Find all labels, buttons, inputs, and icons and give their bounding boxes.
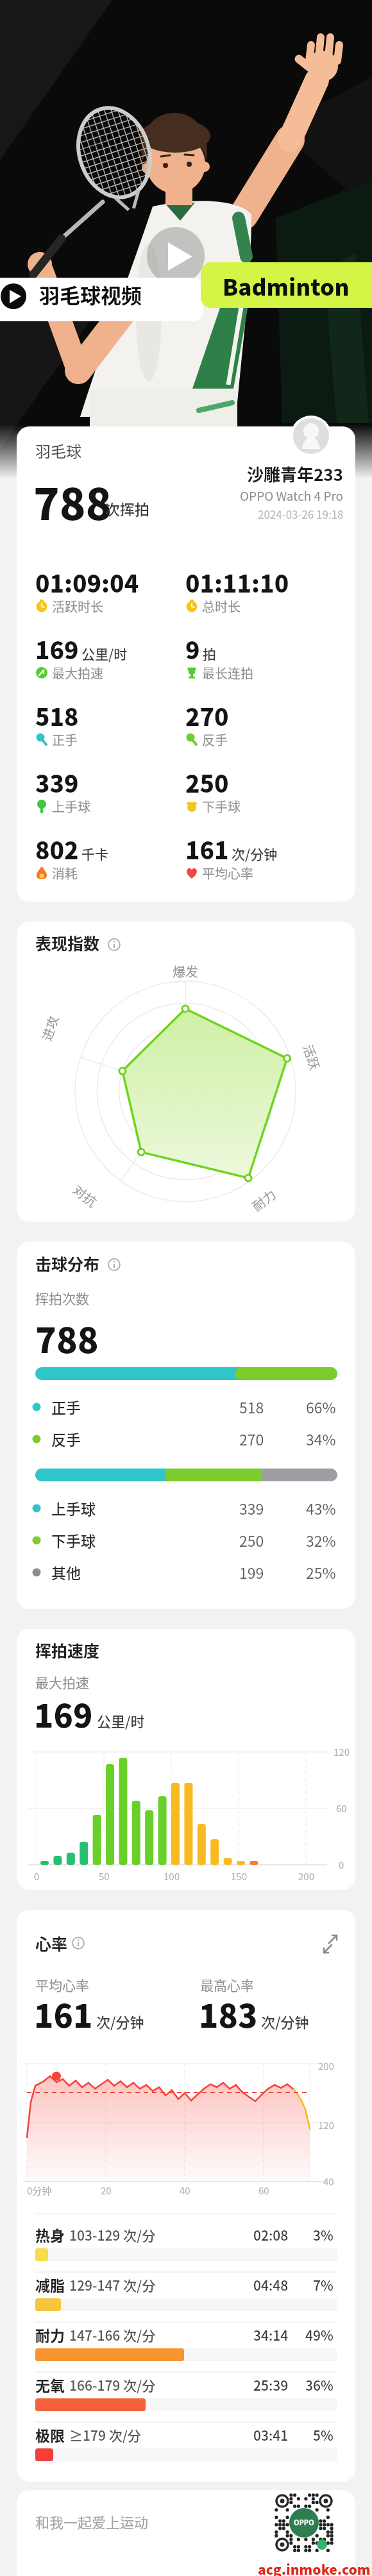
staticText: 次/分钟	[261, 2011, 309, 2032]
staticText: 100	[164, 1869, 180, 1883]
staticText: 下手球	[202, 797, 241, 816]
staticText: 43%	[306, 1497, 336, 1519]
staticText: 0	[34, 1869, 40, 1883]
staticText: 上手球	[52, 797, 90, 816]
staticText: 518	[239, 1396, 264, 1417]
staticText: 36%	[305, 2375, 334, 2395]
staticText: 5%	[313, 2425, 334, 2445]
staticText: 788	[35, 1313, 99, 1363]
staticText: 沙雕青年233	[247, 462, 344, 486]
staticText: 2024-03-26 19:18	[258, 506, 344, 522]
staticText: OPPO	[294, 2517, 314, 2527]
staticText: 20	[101, 2184, 112, 2198]
staticText: 103-129 次/分	[69, 2225, 156, 2244]
staticText: 32%	[306, 1529, 336, 1551]
staticText: 公里/时	[81, 644, 128, 663]
staticText: 总时长	[202, 597, 241, 616]
staticText: 耐力	[248, 1185, 278, 1214]
staticText: 正手	[52, 730, 78, 749]
staticText: 02:08	[253, 2225, 289, 2244]
staticText: 40	[323, 2175, 334, 2189]
staticText: 和我一起爱上运动	[35, 2511, 149, 2532]
staticText: 极限	[35, 2424, 65, 2445]
staticText: 正手	[51, 1396, 81, 1417]
staticText: 161	[34, 1991, 93, 2037]
staticText: 次/分钟	[96, 2011, 144, 2032]
staticText: 34:14	[253, 2325, 289, 2344]
staticText: 公里/时	[97, 1710, 145, 1731]
staticText: 147-166 次/分	[69, 2325, 156, 2344]
staticText: 518	[35, 698, 79, 733]
staticText: 199	[239, 1562, 264, 1583]
staticText: 羽毛球视频	[39, 280, 142, 309]
staticText: 活跃时长	[52, 597, 103, 616]
staticText: 25%	[306, 1562, 336, 1583]
staticText: 802	[35, 832, 79, 866]
staticText: 拍	[203, 644, 216, 663]
staticText: 60	[336, 1801, 347, 1815]
staticText: 平均心率	[202, 864, 253, 882]
staticText: 200	[298, 1869, 314, 1883]
staticText: 183	[199, 1991, 258, 2037]
staticText: 其他	[51, 1562, 81, 1583]
staticText: 120	[334, 1745, 350, 1759]
staticText: 最大拍速	[35, 1672, 89, 1692]
staticText: 耐力	[35, 2324, 65, 2345]
staticText: 无氧	[35, 2374, 65, 2395]
staticText: 166-179 次/分	[69, 2375, 156, 2395]
staticText: 平均心率	[35, 1975, 89, 1994]
staticText: acg.inmoke.com	[258, 2559, 371, 2576]
staticText: 01:11:10	[185, 565, 289, 600]
staticText: 200	[318, 2059, 334, 2073]
staticText: 339	[35, 765, 79, 800]
staticText: 千卡	[81, 844, 108, 863]
staticText: 120	[318, 2118, 334, 2132]
staticText: 40	[180, 2184, 190, 2198]
staticText: 169	[34, 1690, 93, 1737]
staticText: 消耗	[52, 864, 78, 882]
staticText: OPPO Watch 4 Pro	[240, 487, 344, 505]
staticText: 9	[185, 632, 200, 666]
staticText: 对抗	[71, 1180, 101, 1209]
staticText: 250	[185, 765, 229, 800]
staticText: 01:09:04	[35, 565, 139, 600]
staticText: 66%	[306, 1396, 336, 1417]
staticText: 活跃	[301, 1042, 325, 1072]
staticText: 161	[185, 832, 229, 866]
staticText: 上手球	[51, 1497, 96, 1519]
staticText: 50	[99, 1869, 110, 1883]
staticText: 最大拍速	[52, 664, 103, 682]
staticText: 0分钟	[27, 2184, 52, 2198]
staticText: 次/分钟	[232, 844, 278, 863]
staticText: 270	[185, 698, 229, 733]
staticText: 25:39	[253, 2375, 289, 2395]
staticText: 反手	[51, 1428, 81, 1449]
staticText: 169	[35, 632, 79, 666]
staticText: 羽毛球	[35, 439, 81, 462]
staticText: 下手球	[51, 1529, 96, 1551]
staticText: 表现指数	[35, 931, 100, 954]
staticText: 心率	[35, 1932, 68, 1955]
staticText: 150	[231, 1869, 247, 1883]
staticText: 04:48	[253, 2275, 289, 2294]
staticText: 270	[239, 1428, 264, 1449]
staticText: 进攻	[37, 1013, 61, 1043]
staticText: 788	[33, 470, 112, 532]
staticText: 减脂	[35, 2274, 65, 2295]
staticText: 次挥拍	[105, 498, 149, 519]
staticText: 129-147 次/分	[69, 2275, 156, 2294]
staticText: 0	[339, 1858, 344, 1872]
staticText: 挥拍次数	[35, 1288, 89, 1308]
staticText: 爆发	[173, 962, 198, 981]
staticText: 7%	[313, 2275, 334, 2294]
staticText: 339	[239, 1497, 264, 1519]
staticText: 60	[258, 2184, 269, 2198]
staticText: 250	[239, 1529, 264, 1551]
staticText: 热身	[35, 2224, 65, 2245]
staticText: 34%	[306, 1428, 336, 1449]
staticText: 3%	[313, 2225, 334, 2244]
staticText: 最长连拍	[202, 664, 253, 682]
staticText: 击球分布	[35, 1252, 100, 1275]
staticText: 49%	[305, 2325, 334, 2344]
staticText: 03:41	[253, 2425, 289, 2445]
